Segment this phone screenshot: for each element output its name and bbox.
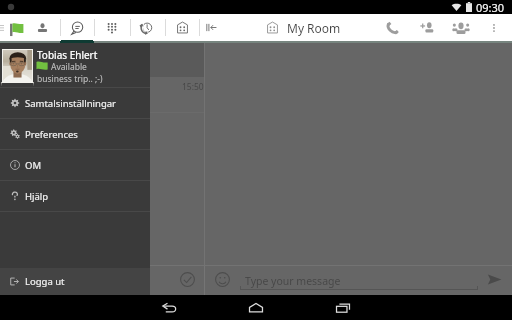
- button[interactable]: Collapse panel: [199, 14, 223, 41]
- button[interactable]: Group: [445, 14, 477, 41]
- staticText: Available: [51, 61, 87, 73]
- button[interactable]: Rooms: [166, 14, 198, 41]
- button[interactable]: My Room: [266, 14, 376, 41]
- button[interactable]: Tobias Ehlert: [0, 43, 150, 87]
- staticText: business trip.. ;-): [37, 73, 103, 85]
- button[interactable]: Preferences: [0, 119, 150, 149]
- button[interactable]: Recent apps: [303, 295, 383, 320]
- button[interactable]: OM: [0, 150, 150, 180]
- button[interactable]: Call: [377, 14, 409, 41]
- button[interactable]: Logga ut: [0, 268, 150, 295]
- staticText: 09:30: [476, 0, 505, 14]
- button[interactable]: More options: [483, 14, 505, 41]
- staticText: Tobias Ehlert: [37, 48, 98, 62]
- staticText: Samtalsinställningar: [25, 97, 117, 110]
- staticText: Type your message: [245, 274, 341, 288]
- staticText: 15:50: [182, 81, 204, 93]
- button[interactable]: Send: [482, 267, 507, 292]
- button[interactable]: Mark as read: [174, 266, 201, 293]
- button[interactable]: Contacts: [28, 14, 56, 41]
- button[interactable]: Add person: [412, 14, 444, 41]
- button[interactable]: Insert emoji: [209, 266, 236, 293]
- button[interactable]: Dialpad: [96, 14, 128, 41]
- staticText: My Room: [287, 20, 341, 36]
- staticText: OM: [25, 159, 42, 172]
- staticText: Hjälp: [25, 190, 49, 203]
- button[interactable]: Call history: [130, 14, 162, 41]
- button[interactable]: Chats: [61, 14, 93, 41]
- staticText: Logga ut: [25, 275, 65, 288]
- button[interactable]: Open navigation drawer: [0, 14, 9, 41]
- button[interactable]: Back: [130, 295, 210, 320]
- button[interactable]: Status flag: [5, 14, 27, 41]
- staticText: Preferences: [25, 128, 78, 141]
- button[interactable]: Samtalsinställningar: [0, 88, 150, 118]
- button[interactable]: Hjälp: [0, 181, 150, 211]
- button[interactable]: Home: [216, 295, 296, 320]
